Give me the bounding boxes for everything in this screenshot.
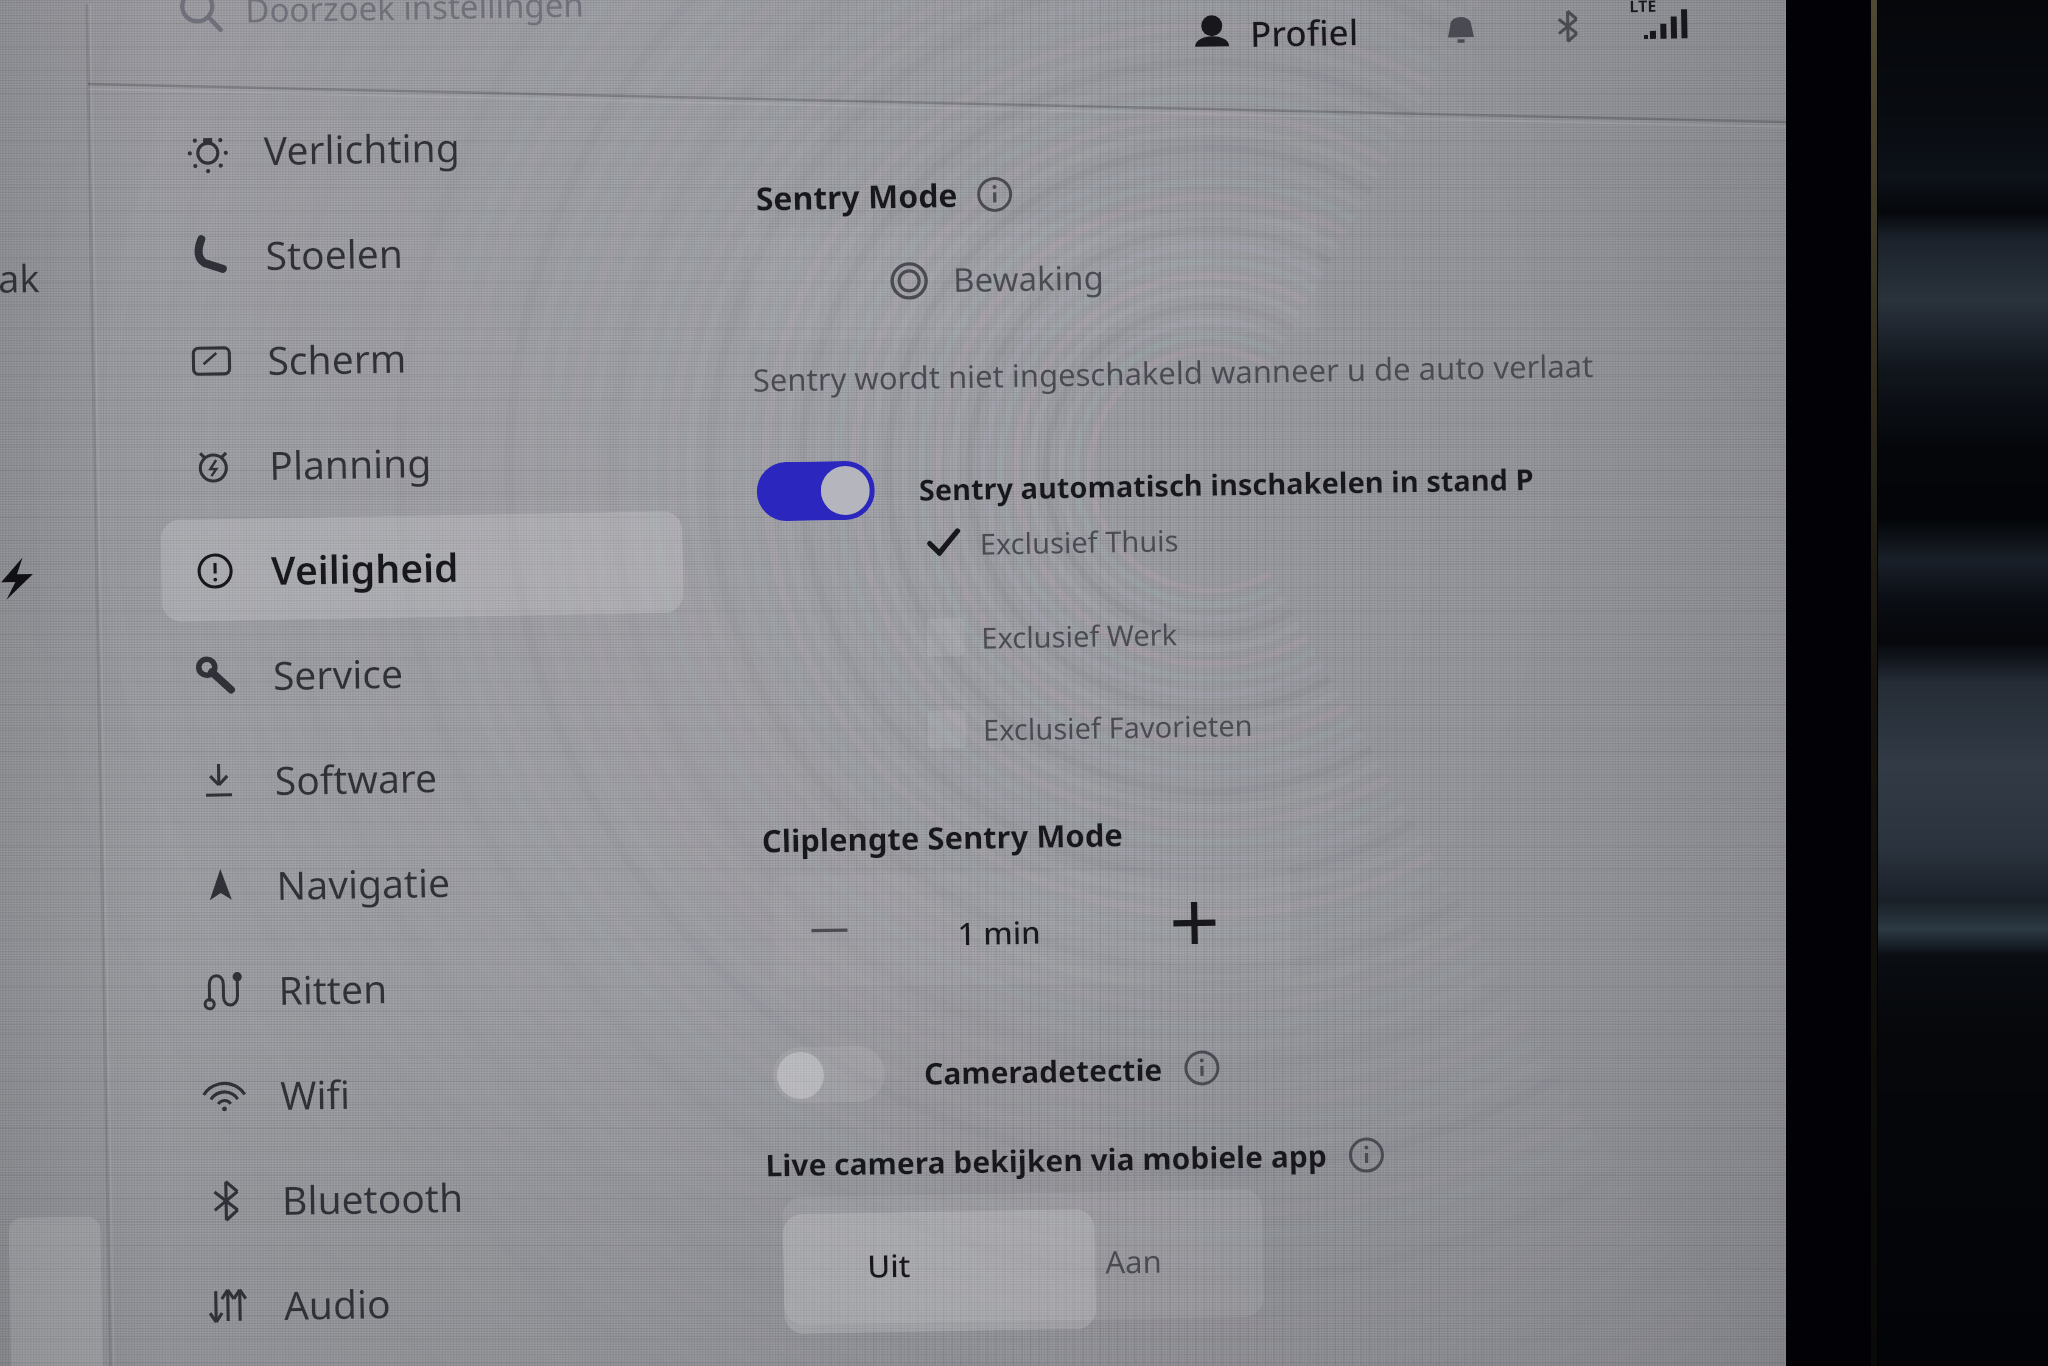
button[interactable]: Doorzoek instellingen (171, 0, 593, 42)
staticText: Stoelen (265, 226, 404, 281)
button[interactable]: Scherm (157, 301, 680, 412)
button[interactable]: Ritten (167, 931, 691, 1042)
staticText: Bluetooth (282, 1170, 463, 1226)
button[interactable]: Cliplengte verhogen (1154, 882, 1235, 964)
button[interactable]: Navigatie (166, 826, 689, 937)
staticText: Planning (269, 435, 432, 491)
button[interactable]: Veiligheid (160, 511, 684, 622)
staticText: Exclusief Favorieten (983, 705, 1253, 749)
button[interactable]: Exclusief Favorieten (925, 702, 1253, 752)
staticText: Service (272, 646, 404, 701)
staticText: Verlichting (263, 120, 460, 176)
button[interactable]: Planning (158, 406, 682, 517)
button[interactable]: Bluetooth (171, 1141, 695, 1252)
staticText: Cliplengte Sentry Mode (761, 813, 1124, 861)
button[interactable]: Cliplengte verlagen (774, 890, 885, 970)
button[interactable]: LTE signaal (1627, 0, 1698, 43)
button[interactable]: Bluetooth (1543, 2, 1592, 51)
staticText: Doorzoek instellingen (245, 0, 585, 32)
staticText: Scherm (267, 331, 407, 386)
staticText: ak (0, 251, 40, 304)
button[interactable]: Exclusief Werk (923, 611, 1178, 660)
staticText: Sentry automatisch inschakelen in stand … (918, 459, 1534, 509)
button[interactable]: Cameradetectie (772, 1031, 1222, 1112)
staticText: Live camera bekijken via mobiele app (765, 1135, 1328, 1185)
button[interactable]: Informatie (975, 175, 1014, 214)
button[interactable]: Software (164, 721, 688, 832)
button[interactable]: Wifi (169, 1036, 693, 1147)
button[interactable]: Verlichting (153, 91, 677, 202)
staticText: Bewaking (953, 254, 1104, 302)
staticText: Uit (867, 1244, 912, 1287)
staticText: Ritten (278, 961, 388, 1016)
button[interactable]: Informatie (1347, 1136, 1386, 1174)
button[interactable]: Uit (782, 1209, 1096, 1334)
button[interactable]: Bewaking (748, 219, 1320, 341)
staticText: Profiel (1249, 8, 1359, 58)
staticText: Sentry Mode (755, 173, 958, 220)
staticText: Wifi (280, 1067, 351, 1121)
button[interactable]: Sentry Mode (755, 172, 1014, 221)
staticText: Veiligheid (271, 540, 459, 596)
staticText: Software (274, 750, 438, 806)
button[interactable]: Audio (173, 1246, 697, 1357)
staticText: Aan (1105, 1240, 1163, 1283)
button[interactable]: Service (162, 616, 686, 727)
button[interactable]: Meldingen (1435, 4, 1486, 55)
staticText: Exclusief Werk (981, 614, 1178, 657)
button[interactable]: Aan (1094, 1206, 1264, 1329)
staticText: 1 min (957, 911, 1041, 954)
staticText: Sentry wordt niet ingeschakeld wanneer u… (752, 344, 1594, 401)
staticText: Audio (283, 1276, 391, 1331)
button[interactable]: Exclusief Thuis (921, 517, 1179, 566)
button[interactable]: Informatie (1183, 1049, 1221, 1087)
staticText: Cameradetectie (924, 1049, 1163, 1094)
button[interactable]: Live camera bekijken via mobiele app (765, 1134, 1386, 1185)
staticText: Navigatie (276, 855, 451, 911)
button[interactable]: Profiel (1187, 4, 1363, 63)
button[interactable]: Stoelen (155, 196, 678, 307)
staticText: LTE (1629, 0, 1657, 17)
staticText: Exclusief Thuis (979, 520, 1179, 563)
button[interactable]: Sentry automatisch inschakelen in stand … (756, 441, 1534, 528)
